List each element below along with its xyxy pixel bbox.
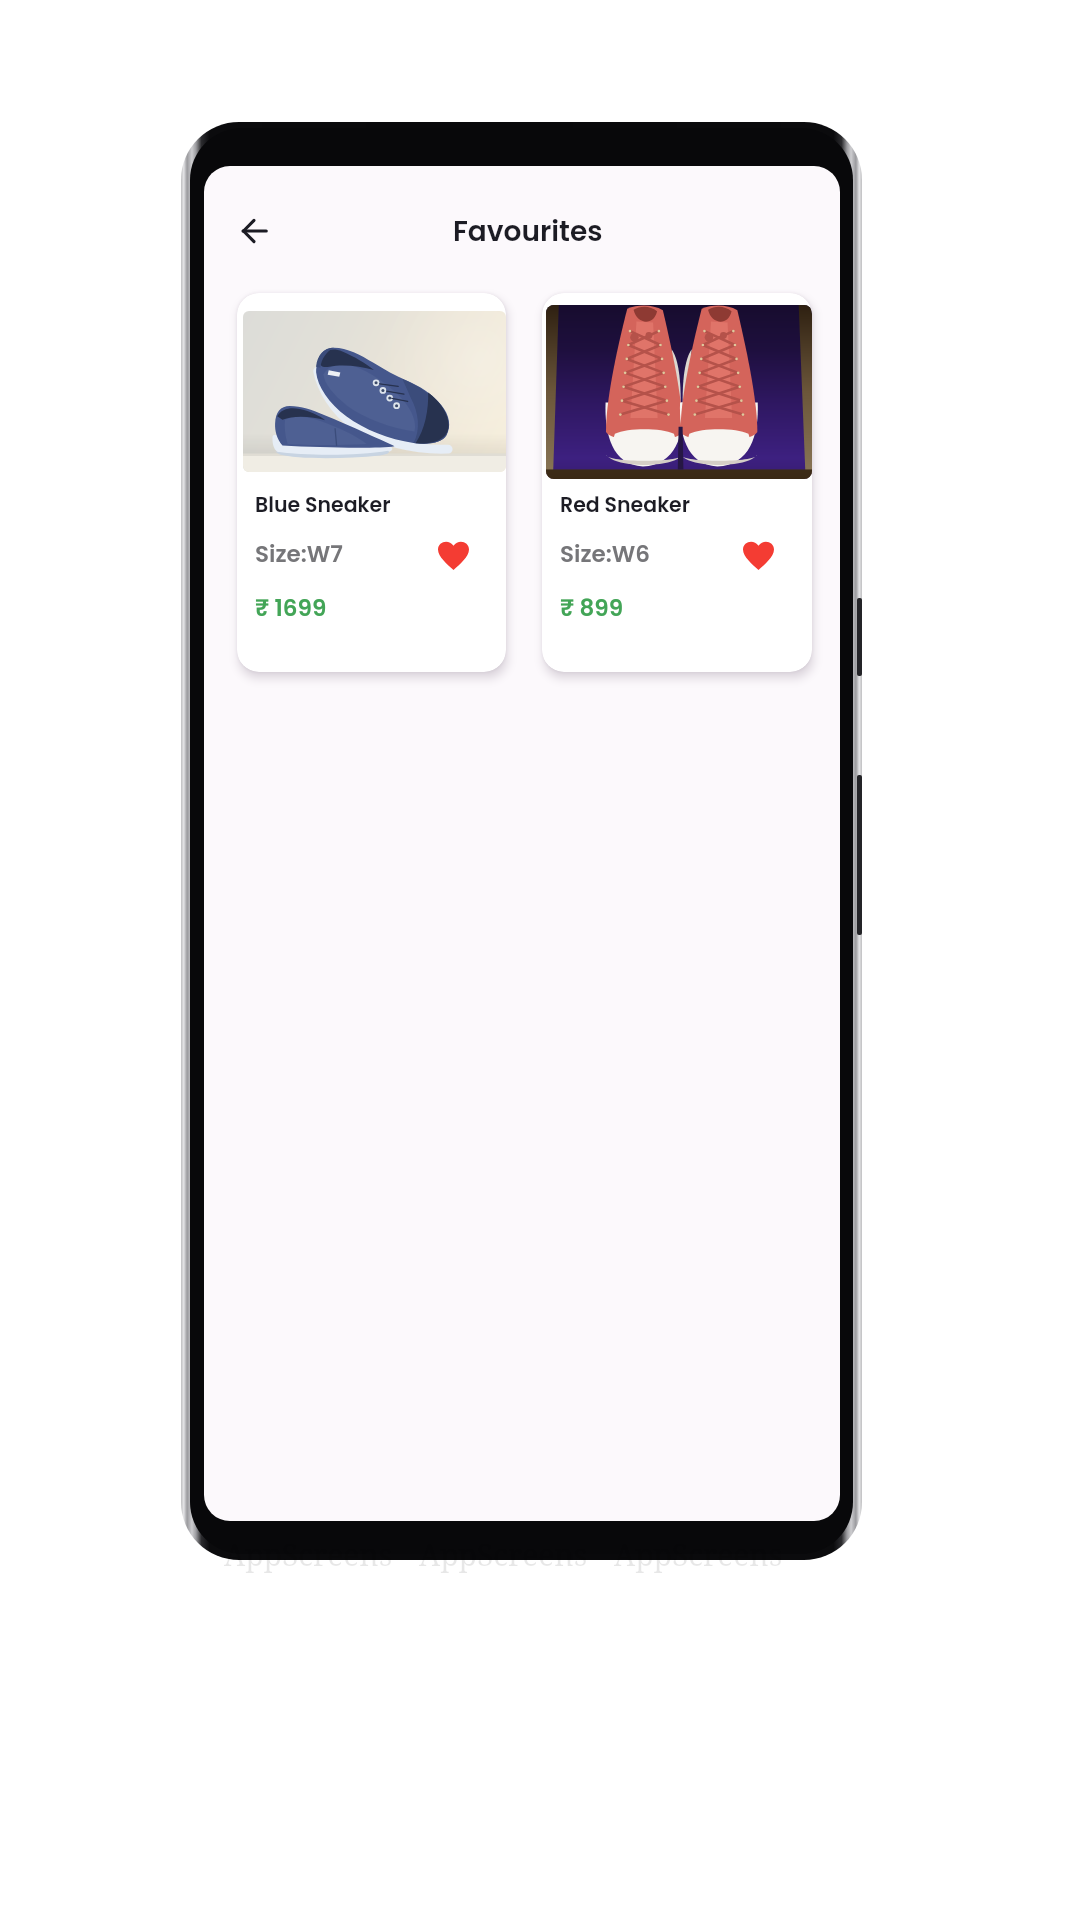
staticText: Size:W7 [255,538,343,570]
staticText: Favourites [453,212,603,251]
staticText: AppScreens [614,1534,783,1575]
button[interactable]: Favourite [736,533,780,577]
staticText: Red Sneaker [560,490,691,519]
staticText: Blue Sneaker [255,490,391,519]
staticText: AppScreens [224,1534,393,1575]
button[interactable]: Back [232,209,276,253]
staticText: AppScreens [419,1534,588,1575]
button[interactable]: Red Sneaker [542,293,812,672]
staticText: Size:W6 [560,538,651,570]
staticText: ₹ 899 [560,592,624,624]
staticText: ₹ 1699 [255,592,327,624]
button[interactable]: Blue Sneaker [237,293,506,672]
button[interactable]: Favourite [431,533,475,577]
